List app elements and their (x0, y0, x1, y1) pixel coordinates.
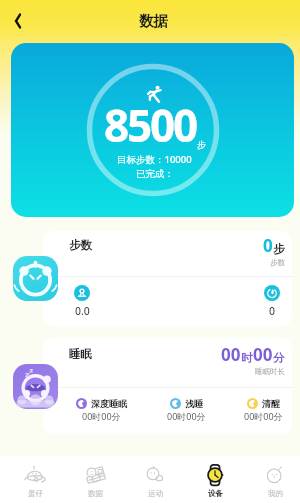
staticText: 00 (253, 343, 273, 366)
staticText: 数据 (88, 489, 103, 498)
staticText: 步数 (69, 238, 92, 252)
staticText: 00时00分 (82, 410, 121, 422)
staticText: 8500 (104, 95, 196, 155)
button[interactable]: 我的 (245, 456, 300, 503)
staticText: 分 (273, 351, 285, 365)
staticText: 00时00分 (167, 410, 206, 422)
button[interactable]: 运动 (125, 456, 185, 503)
staticText: 0 (263, 234, 273, 257)
button[interactable]: 步数 (43, 231, 292, 326)
staticText: 睡眠 (69, 347, 92, 361)
staticText: 设备 (208, 489, 223, 498)
staticText: 目标步数：10000 (117, 153, 192, 166)
staticText: 已完成： (136, 168, 174, 180)
button[interactable]: 睡眠 (43, 338, 292, 434)
staticText: 0 (269, 304, 276, 318)
staticText: 时 (241, 351, 253, 365)
staticText: 清醒 (262, 398, 280, 409)
staticText: 运动 (148, 489, 163, 498)
staticText: 步数 (270, 258, 285, 267)
staticText: 00 (221, 343, 241, 366)
staticText: 浅睡 (185, 398, 203, 409)
staticText: 数据 (139, 12, 168, 30)
staticText: 睡眠时长 (255, 367, 285, 376)
staticText: 蛋仔 (28, 489, 43, 498)
staticText: 步 (197, 139, 206, 150)
staticText: 00时00分 (244, 410, 283, 422)
staticText: 0.0 (75, 304, 90, 318)
button[interactable]: 步数 (13, 256, 58, 301)
button[interactable]: 数据 (65, 456, 125, 503)
button[interactable]: 8500 (11, 43, 294, 217)
staticText: 步 (273, 242, 285, 256)
staticText: 我的 (268, 489, 283, 498)
button[interactable]: 蛋仔 (5, 456, 65, 503)
button[interactable]: 设备 (185, 456, 245, 503)
staticText: 深度睡眠 (91, 398, 127, 409)
button[interactable]: 睡眠 (13, 364, 58, 409)
button[interactable]: Back (5, 8, 31, 34)
